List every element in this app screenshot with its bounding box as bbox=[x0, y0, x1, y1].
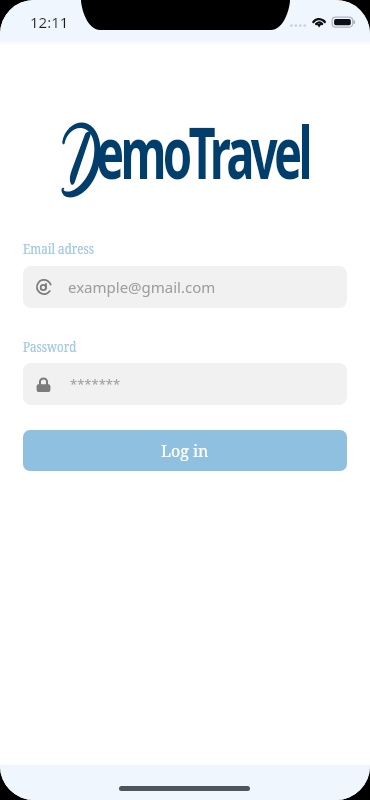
staticText: emoTravel bbox=[96, 102, 309, 200]
button[interactable]: Log in bbox=[23, 430, 347, 471]
button[interactable]: example@gmail.com bbox=[23, 266, 347, 308]
staticText: 12:11 bbox=[30, 12, 69, 32]
staticText: example@gmail.com bbox=[68, 277, 216, 297]
staticText: ******* bbox=[70, 375, 121, 393]
staticText: Email adress bbox=[23, 239, 94, 258]
staticText: Log in bbox=[161, 440, 209, 462]
button[interactable]: ******* bbox=[23, 363, 347, 405]
staticText: Password bbox=[23, 337, 77, 356]
